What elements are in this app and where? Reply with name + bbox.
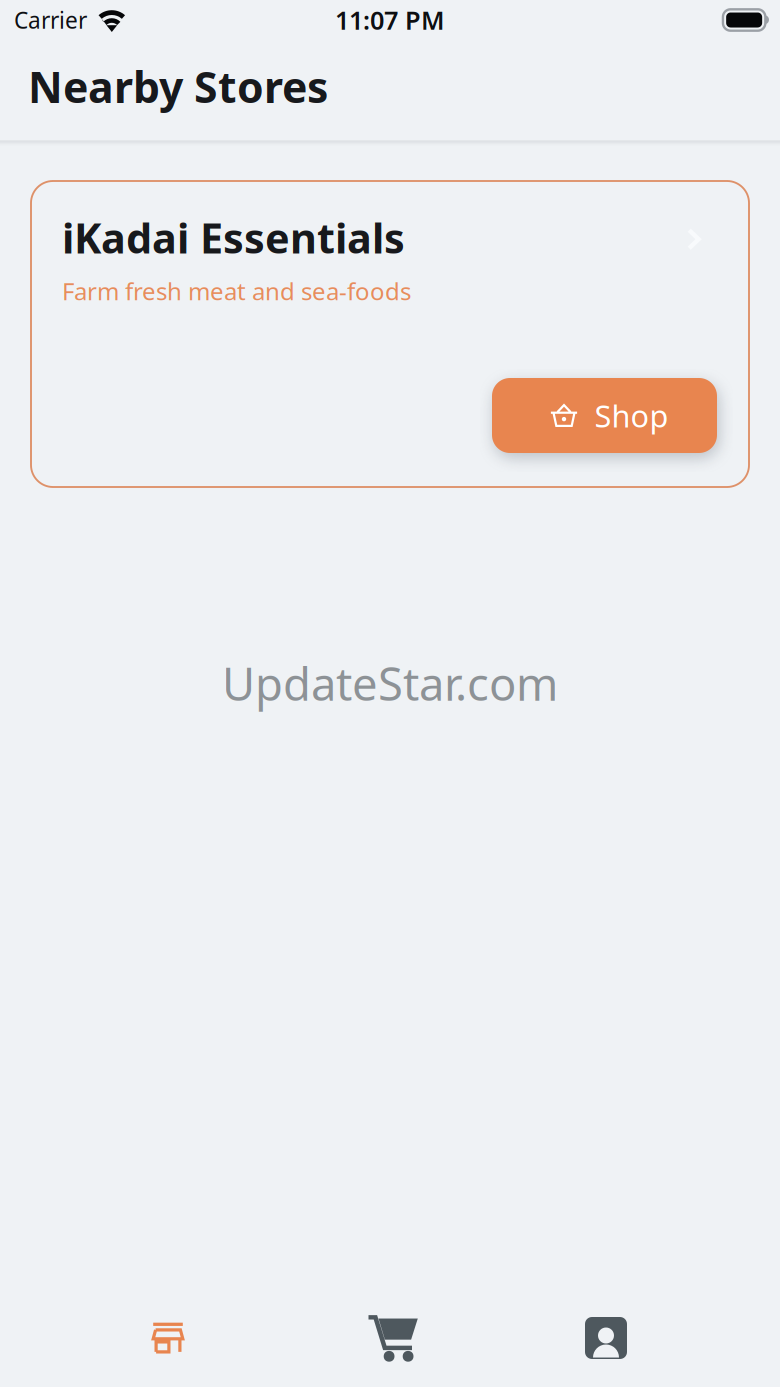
button[interactable]: Stores xyxy=(0,1302,336,1374)
staticText: Nearby Stores xyxy=(28,58,328,115)
button[interactable]: Cart xyxy=(336,1302,450,1374)
staticText: iKadai Essentials xyxy=(62,210,405,265)
button[interactable]: Account xyxy=(450,1302,780,1374)
button[interactable]: Shop xyxy=(492,378,717,453)
staticText: 11:07 PM xyxy=(335,3,445,37)
button[interactable]: iKadai Essentials xyxy=(31,181,749,487)
staticText: Shop xyxy=(594,395,668,436)
staticText: Carrier xyxy=(14,5,87,35)
staticText: Farm fresh meat and sea-foods xyxy=(62,275,411,307)
staticText: UpdateStar.com xyxy=(222,653,558,713)
